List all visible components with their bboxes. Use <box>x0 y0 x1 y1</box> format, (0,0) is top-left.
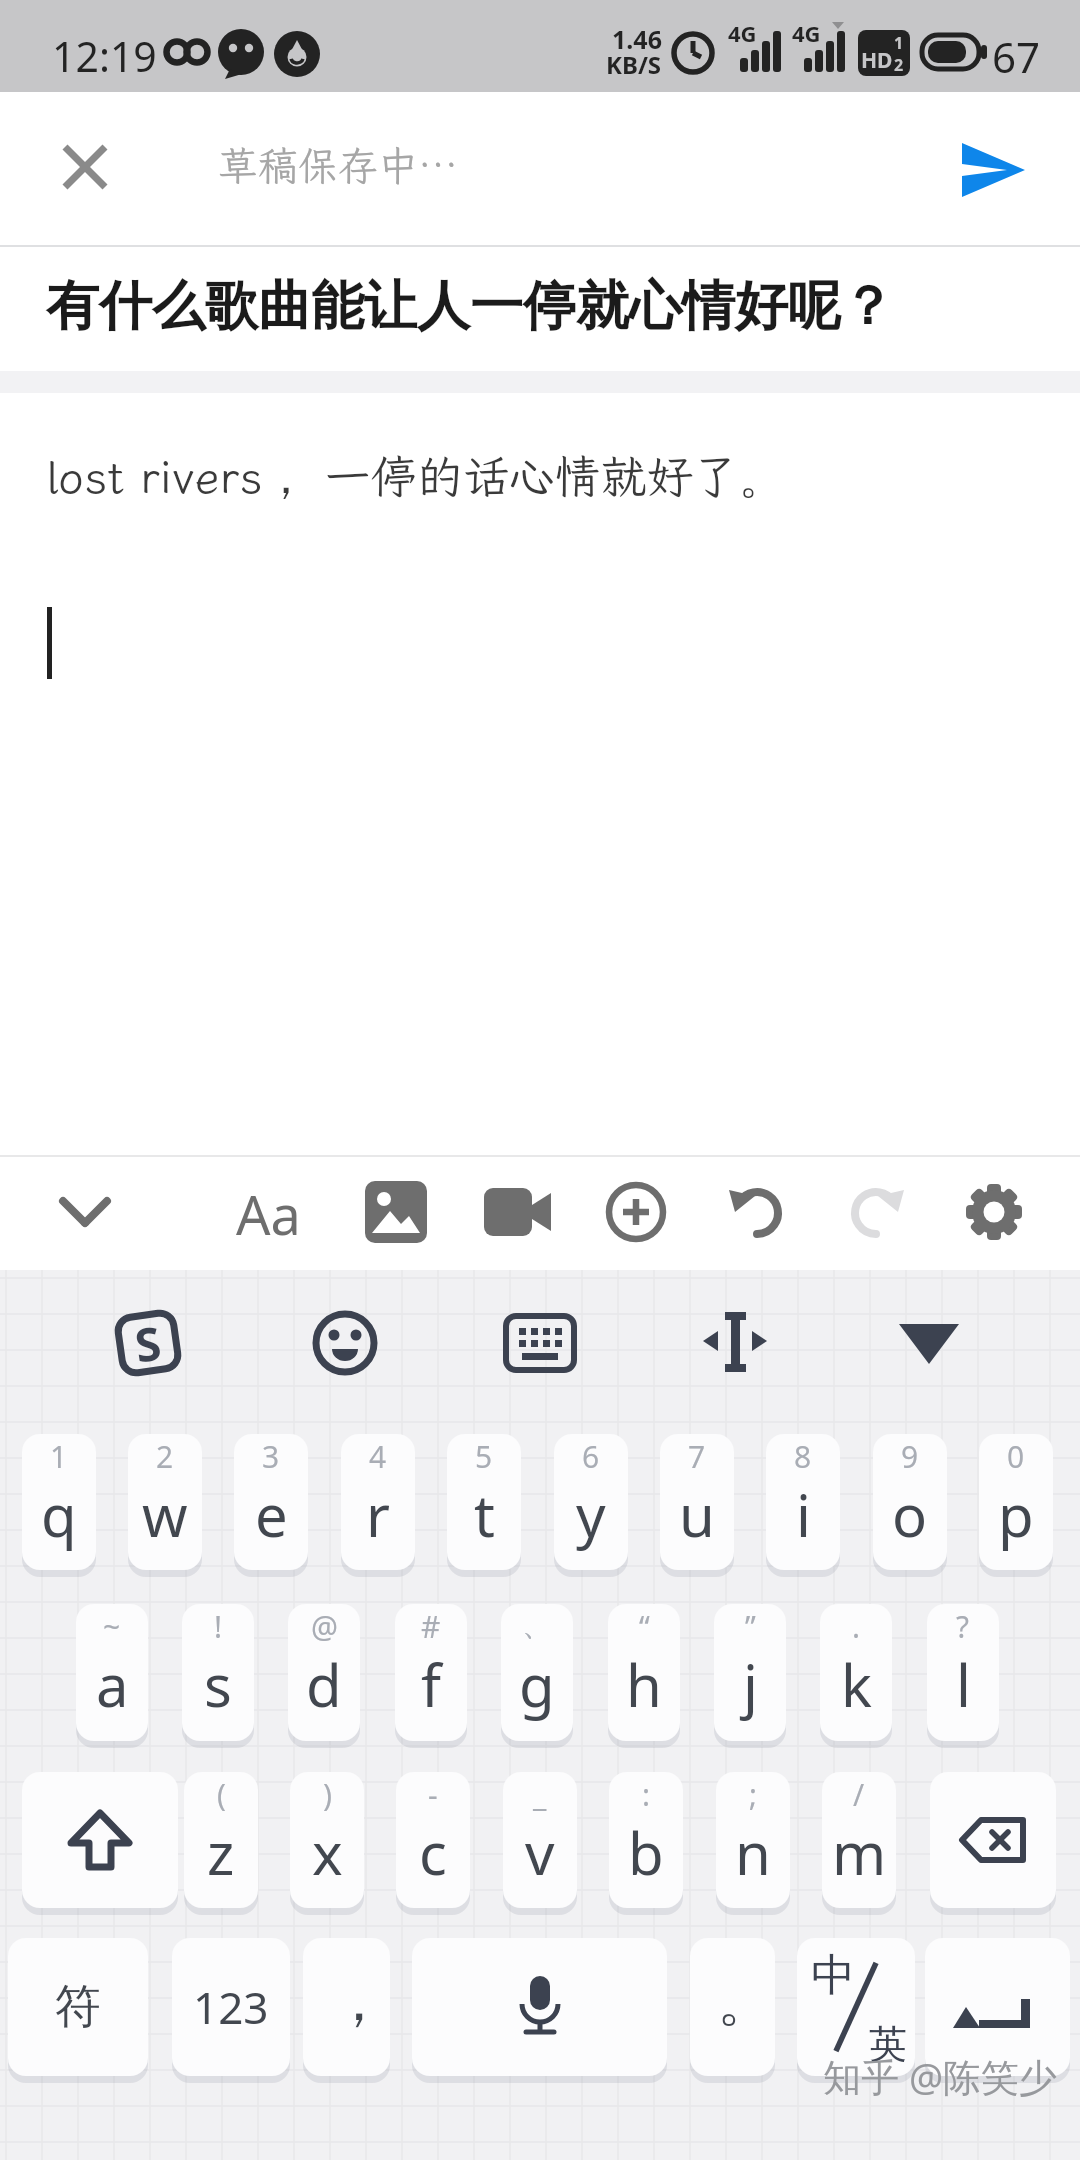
staticText: 12:19 <box>52 28 157 84</box>
staticText: 1.46 <box>612 22 662 56</box>
button[interactable]: . <box>820 1604 892 1741</box>
staticText: 123 <box>193 1977 269 2037</box>
button[interactable]: ; <box>716 1772 790 1908</box>
staticText: 中 <box>811 1948 855 2003</box>
staticText: t <box>474 1475 495 1554</box>
staticText: ! <box>214 1606 223 1647</box>
button[interactable]: 中 <box>797 1938 915 2076</box>
button[interactable] <box>930 1772 1056 1908</box>
staticText: ， <box>331 1966 387 2037</box>
staticText: ) <box>323 1774 332 1815</box>
staticText: e <box>255 1475 288 1554</box>
staticText: HD <box>861 46 893 75</box>
button[interactable]: “ <box>608 1604 680 1741</box>
button[interactable]: 9 <box>873 1434 947 1570</box>
staticText: i <box>796 1475 811 1554</box>
button[interactable]: : <box>609 1772 683 1908</box>
button[interactable]: 8 <box>766 1434 840 1570</box>
staticText: @ <box>311 1606 338 1647</box>
button[interactable] <box>55 1187 115 1237</box>
button[interactable]: 7 <box>660 1434 734 1570</box>
button[interactable] <box>700 1308 770 1378</box>
staticText: b <box>628 1813 664 1892</box>
staticText: 3 <box>262 1436 280 1477</box>
staticText: 、 <box>522 1606 552 1644</box>
staticText: y <box>576 1475 606 1554</box>
button[interactable]: 5 <box>447 1434 521 1570</box>
button[interactable]: 1 <box>22 1434 96 1570</box>
button[interactable] <box>606 1182 666 1242</box>
staticText: 英 <box>869 2020 907 2068</box>
staticText: ” <box>745 1606 756 1647</box>
button[interactable]: / <box>822 1772 896 1908</box>
staticText: ; <box>749 1774 758 1815</box>
button[interactable] <box>311 1309 379 1377</box>
button[interactable] <box>897 1322 961 1368</box>
button[interactable]: ~ <box>76 1604 148 1741</box>
staticText: 5 <box>475 1436 493 1477</box>
staticText: h <box>626 1645 662 1724</box>
button[interactable]: ， <box>303 1938 390 2076</box>
staticText: r <box>366 1475 390 1554</box>
staticText: 9 <box>901 1436 919 1477</box>
button[interactable]: 符 <box>8 1938 148 2076</box>
button[interactable]: # <box>395 1604 467 1741</box>
button[interactable]: ( <box>184 1772 258 1908</box>
button[interactable] <box>925 1938 1070 2076</box>
staticText: m <box>832 1813 887 1892</box>
button[interactable] <box>964 1182 1024 1242</box>
staticText: j <box>743 1645 758 1724</box>
button[interactable] <box>22 1772 178 1908</box>
staticText: 草稿保存中… <box>218 139 458 192</box>
button[interactable]: Aa <box>236 1177 328 1247</box>
button[interactable]: 123 <box>172 1938 290 2076</box>
staticText: f <box>421 1645 441 1724</box>
staticText: l <box>956 1645 971 1724</box>
staticText: 1 <box>50 1436 68 1477</box>
button[interactable] <box>412 1938 667 2076</box>
staticText: KB/S <box>606 48 662 81</box>
staticText: ( <box>217 1774 226 1815</box>
button[interactable]: 2 <box>128 1434 202 1570</box>
staticText: _ <box>533 1774 547 1815</box>
staticText: s <box>204 1645 232 1724</box>
button[interactable]: @ <box>288 1604 360 1741</box>
staticText: 0 <box>1007 1436 1025 1477</box>
button[interactable] <box>506 1316 574 1370</box>
button[interactable] <box>950 128 1034 208</box>
staticText: 2 <box>894 54 904 76</box>
button[interactable]: ) <box>290 1772 364 1908</box>
button[interactable]: - <box>396 1772 470 1908</box>
staticText: a <box>96 1645 129 1724</box>
button[interactable]: 3 <box>234 1434 308 1570</box>
staticText: z <box>207 1813 235 1892</box>
button[interactable]: 、 <box>501 1604 573 1741</box>
staticText: 4 <box>369 1436 387 1477</box>
staticText: 4G <box>728 18 757 48</box>
button[interactable]: _ <box>503 1772 577 1908</box>
button[interactable]: 4 <box>341 1434 415 1570</box>
staticText: # <box>421 1606 441 1647</box>
staticText: “ <box>639 1606 650 1647</box>
staticText: 6 <box>582 1436 600 1477</box>
staticText: 4G <box>792 18 821 48</box>
button[interactable]: 0 <box>979 1434 1053 1570</box>
staticText: 1 <box>894 32 904 54</box>
button[interactable]: 。 <box>690 1938 775 2076</box>
button[interactable] <box>484 1185 554 1241</box>
staticText: ? <box>956 1606 970 1647</box>
button[interactable]: ” <box>714 1604 786 1741</box>
button[interactable] <box>846 1184 906 1240</box>
button[interactable]: ? <box>927 1604 999 1741</box>
button[interactable] <box>55 137 115 197</box>
button[interactable]: 6 <box>554 1434 628 1570</box>
staticText: w <box>142 1475 188 1554</box>
staticText: 7 <box>688 1436 706 1477</box>
staticText: Aa <box>236 1177 301 1247</box>
staticText: S <box>131 1310 165 1376</box>
button[interactable]: S <box>112 1307 184 1379</box>
button[interactable]: ! <box>182 1604 254 1741</box>
staticText: 有什么歌曲能让人一停就心情好呢？ <box>46 273 894 340</box>
button[interactable] <box>365 1181 427 1243</box>
button[interactable] <box>727 1184 787 1240</box>
